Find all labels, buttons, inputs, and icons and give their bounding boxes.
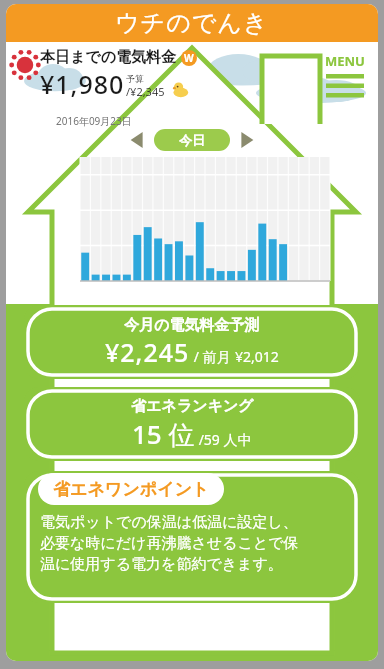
- staticText: 予算: [126, 73, 144, 84]
- button[interactable]: Menu: [316, 46, 374, 108]
- staticText: ¥2,012: [235, 347, 279, 366]
- button[interactable]: Next day: [236, 129, 258, 151]
- staticText: ¥2,245: [105, 335, 190, 369]
- staticText: 電気ポットでの保温は低温に設定し、: [40, 513, 298, 532]
- staticText: 今日: [179, 132, 205, 148]
- staticText: 2016年09月23日: [56, 114, 132, 128]
- staticText: /59 人中: [195, 430, 252, 449]
- button[interactable]: Wallet info: [181, 50, 197, 66]
- staticText: 温に使用する電力を節約できます。: [40, 555, 283, 574]
- staticText: 本日までの電気料金: [40, 48, 177, 67]
- staticText: 省エネワンポイント: [53, 479, 210, 500]
- button[interactable]: 今月の電気料金予測: [24, 305, 360, 379]
- staticText: / 前月: [190, 347, 235, 366]
- button[interactable]: Previous day: [126, 129, 148, 151]
- staticText: 必要な時にだけ再沸騰させることで保: [40, 534, 299, 553]
- staticText: ウチのでんき: [115, 8, 269, 38]
- staticText: /¥2,345: [126, 84, 165, 99]
- button[interactable]: 省エネランキング: [24, 387, 360, 461]
- staticText: MENU: [325, 52, 365, 70]
- staticText: W: [184, 51, 194, 65]
- staticText: 15 位: [132, 416, 195, 452]
- button[interactable]: 今日: [154, 129, 230, 151]
- button[interactable]: 電気ポットでの保温は低温に設定し、: [24, 471, 360, 603]
- staticText: ¥1,980: [40, 67, 125, 101]
- staticText: 今月の電気料金予測: [124, 316, 260, 335]
- staticText: 省エネランキング: [131, 397, 254, 416]
